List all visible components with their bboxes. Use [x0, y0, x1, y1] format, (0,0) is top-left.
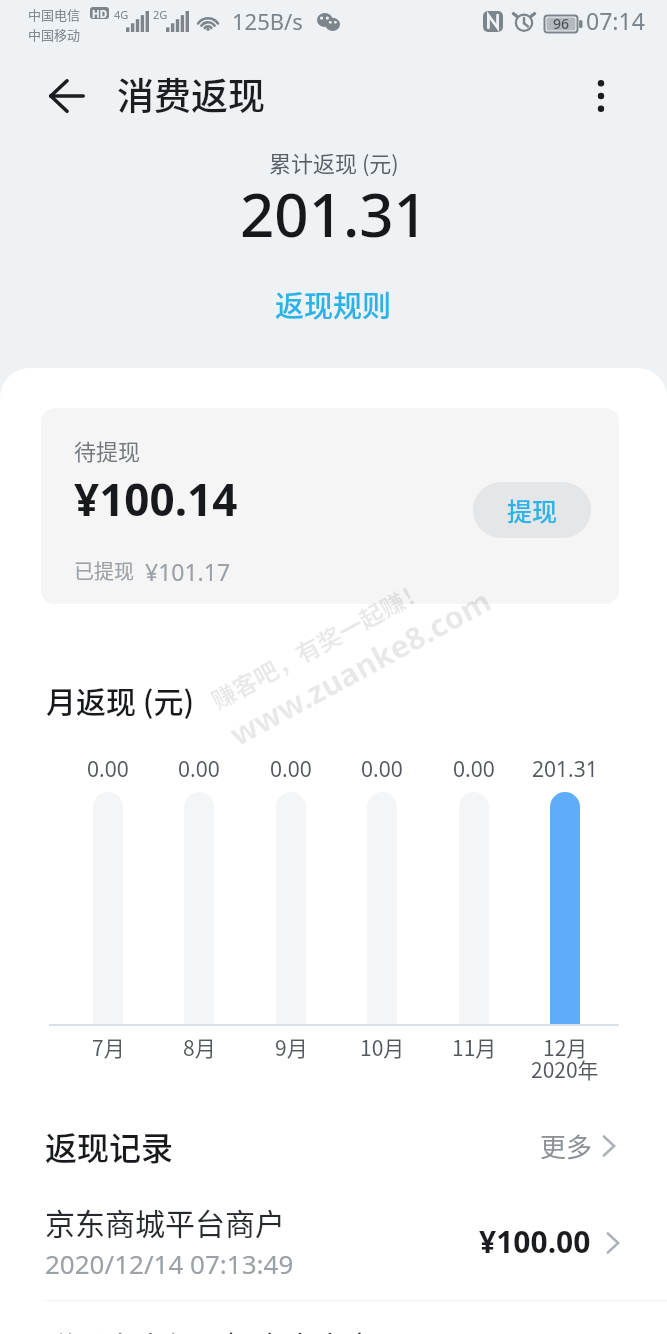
staticText: 中国移动	[28, 25, 81, 44]
staticText: 11月	[452, 1032, 497, 1062]
staticText: 96	[553, 14, 570, 32]
button[interactable]: 提现	[473, 482, 591, 538]
staticText: 月返现 (元)	[46, 678, 195, 721]
staticText: 0.00	[87, 755, 129, 784]
staticText: 返现记录	[45, 1123, 174, 1169]
staticText: 07:14	[586, 5, 645, 36]
staticText: www.zuanke8.com	[222, 579, 498, 755]
staticText: 2020年	[531, 1054, 599, 1084]
staticText: 更多	[540, 1127, 593, 1165]
staticText: 提现	[507, 492, 558, 528]
button[interactable]: 更多	[534, 1121, 623, 1171]
staticText: 联通小店便民招商人人享	[45, 1323, 375, 1334]
staticText: 返现规则	[275, 283, 392, 325]
button[interactable]: 返现规则	[267, 279, 400, 329]
staticText: 4G	[114, 7, 129, 22]
staticText: 2G	[153, 7, 168, 22]
staticText: 0.00	[270, 755, 312, 784]
staticText: 201.31	[240, 173, 428, 255]
staticText: ¥101.17	[145, 556, 231, 587]
button[interactable]: Back	[39, 68, 95, 124]
button[interactable]: 京东商城平台商户	[0, 1186, 667, 1300]
staticText: 12月	[543, 1032, 588, 1062]
staticText: 已提现	[74, 556, 134, 585]
staticText: 125B/s	[232, 6, 303, 36]
staticText: 赚客吧，有奖一起赚！	[204, 571, 432, 716]
staticText: 2020/12/14 07:13:49	[45, 1246, 294, 1281]
staticText: 0.00	[453, 755, 495, 784]
staticText: 0.00	[361, 755, 403, 784]
staticText: 中国电信	[28, 5, 81, 24]
staticText: 201.31	[532, 755, 598, 784]
staticText: 8月	[183, 1032, 216, 1062]
staticText: 累计返现 (元)	[269, 146, 399, 178]
button[interactable]: More options	[573, 68, 629, 124]
staticText: 待提现	[74, 434, 141, 466]
button[interactable]: 联通小店便民招商人人享	[0, 1306, 667, 1334]
staticText: ¥100.00	[479, 1221, 591, 1262]
staticText: 9月	[275, 1032, 308, 1062]
staticText: HD	[92, 7, 107, 19]
staticText: 7月	[92, 1032, 125, 1062]
staticText: 10月	[360, 1032, 405, 1062]
staticText: ¥100.14	[74, 469, 238, 529]
staticText: 消费返现	[117, 67, 265, 121]
staticText: 0.00	[178, 755, 220, 784]
staticText: 京东商城平台商户	[45, 1200, 285, 1243]
